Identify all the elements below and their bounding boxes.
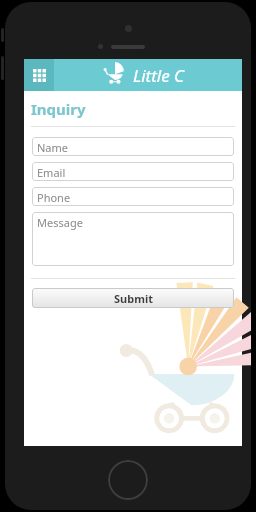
staticText: Phone <box>37 190 71 205</box>
button[interactable]: Phone <box>32 187 234 206</box>
button[interactable]: Message <box>32 212 234 266</box>
button[interactable]: Name <box>32 137 234 156</box>
staticText: Submit <box>114 291 153 306</box>
staticText: Name <box>37 140 69 155</box>
button[interactable]: Submit <box>32 288 234 308</box>
staticText: Inquiry <box>31 99 86 119</box>
button[interactable]: Menu <box>24 59 54 91</box>
staticText: Email <box>37 165 66 180</box>
button[interactable]: Email <box>32 162 234 181</box>
staticText: Little C <box>133 64 185 87</box>
staticText: Message <box>37 215 83 230</box>
